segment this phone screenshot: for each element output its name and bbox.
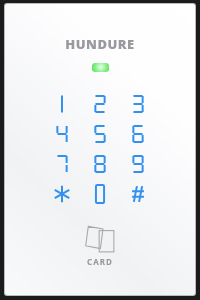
button[interactable]: Key * xyxy=(47,181,77,207)
other: Status indicator xyxy=(92,63,109,72)
button[interactable]: Key 2 xyxy=(85,91,115,117)
button[interactable]: Key 1 xyxy=(47,91,77,117)
button[interactable]: Key 7 xyxy=(47,151,77,177)
button[interactable]: Key 8 xyxy=(85,151,115,177)
button[interactable]: Key 5 xyxy=(85,121,115,147)
staticText: CARD xyxy=(87,256,113,267)
button[interactable]: Card reader xyxy=(71,223,129,268)
button[interactable]: Key 3 xyxy=(123,91,153,117)
button[interactable]: Key 4 xyxy=(47,121,77,147)
button[interactable]: Key # xyxy=(123,181,153,207)
button[interactable]: Key 6 xyxy=(123,121,153,147)
button[interactable]: Key 9 xyxy=(123,151,153,177)
staticText: HUNDURE xyxy=(65,35,135,53)
button[interactable]: Key 0 xyxy=(85,181,115,207)
